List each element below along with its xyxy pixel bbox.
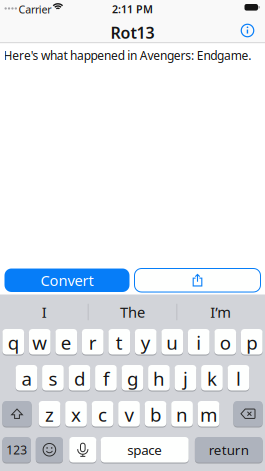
button[interactable]: v <box>118 401 140 427</box>
staticText: h <box>153 366 165 391</box>
button[interactable] <box>134 268 260 292</box>
button[interactable]: m <box>198 401 219 427</box>
staticText: i <box>196 330 201 355</box>
staticText: m <box>200 402 217 427</box>
staticText: o <box>220 330 231 355</box>
button[interactable] <box>241 24 254 37</box>
button[interactable]: a <box>16 365 37 391</box>
button[interactable]: g <box>122 365 143 391</box>
button[interactable]: r <box>82 329 104 355</box>
staticText: r <box>89 330 97 355</box>
button[interactable]: I’m <box>177 294 265 329</box>
button[interactable]: w <box>29 329 51 355</box>
staticText: w <box>32 330 47 355</box>
staticText: n <box>176 402 188 427</box>
staticText: k <box>207 366 217 391</box>
staticText: c <box>98 402 107 427</box>
staticText: The <box>120 302 145 322</box>
button[interactable]: 123 <box>2 437 31 463</box>
staticText: I’m <box>210 302 231 322</box>
button[interactable] <box>69 437 96 463</box>
button[interactable]: return <box>195 437 263 463</box>
button[interactable]: l <box>228 365 249 391</box>
staticText: v <box>124 402 133 427</box>
button[interactable]: d <box>69 365 90 391</box>
button[interactable]: i <box>188 329 210 355</box>
staticText: b <box>150 402 161 427</box>
button[interactable]: n <box>171 401 193 427</box>
staticText: return <box>209 441 249 459</box>
staticText: Convert <box>40 270 93 290</box>
button[interactable]: b <box>145 401 166 427</box>
button[interactable]: I <box>0 294 88 329</box>
button[interactable]: k <box>201 365 223 391</box>
staticText: Here's what happened in Avengers: Endgam… <box>3 47 251 63</box>
button[interactable]: c <box>92 401 113 427</box>
staticText: x <box>71 402 81 427</box>
button[interactable] <box>2 401 32 427</box>
button[interactable] <box>233 401 263 427</box>
button[interactable] <box>36 437 63 463</box>
staticText: Rot13 <box>110 22 154 43</box>
staticText: d <box>74 366 85 391</box>
button[interactable]: h <box>148 365 170 391</box>
button[interactable]: j <box>175 365 196 391</box>
staticText: I <box>42 302 47 322</box>
staticText: j <box>183 366 188 391</box>
staticText: l <box>236 366 241 391</box>
staticText: q <box>8 330 19 355</box>
button[interactable]: e <box>55 329 77 355</box>
button[interactable]: u <box>161 329 183 355</box>
button[interactable]: q <box>2 329 24 355</box>
staticText: f <box>103 366 109 391</box>
button[interactable]: s <box>42 365 64 391</box>
button[interactable]: space <box>101 437 189 463</box>
button[interactable]: x <box>65 401 87 427</box>
button[interactable]: p <box>241 329 263 355</box>
staticText: 2:11 PM <box>112 2 153 16</box>
staticText: s <box>48 366 57 391</box>
button[interactable]: z <box>39 401 60 427</box>
staticText: g <box>127 366 138 391</box>
staticText: z <box>45 402 54 427</box>
staticText: Carrier <box>18 2 51 16</box>
staticText: space <box>127 441 162 459</box>
button[interactable]: f <box>95 365 117 391</box>
button[interactable]: o <box>214 329 236 355</box>
staticText: a <box>21 366 31 391</box>
staticText: 123 <box>6 442 27 458</box>
staticText: p <box>246 330 257 355</box>
staticText: y <box>141 330 151 355</box>
staticText: u <box>166 330 178 355</box>
staticText: t <box>116 330 123 355</box>
button[interactable]: Convert <box>4 268 129 292</box>
button[interactable]: y <box>135 329 157 355</box>
button[interactable]: The <box>88 294 177 329</box>
button[interactable]: t <box>108 329 130 355</box>
staticText: e <box>61 330 72 355</box>
